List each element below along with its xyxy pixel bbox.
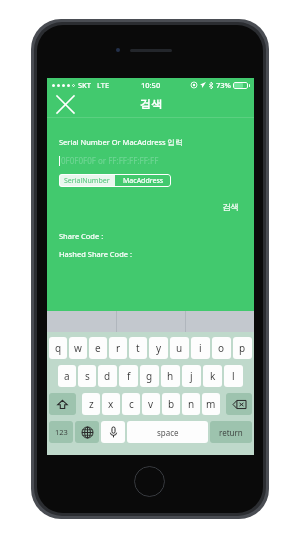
staticText: n: [188, 397, 195, 411]
button[interactable]: w: [69, 337, 87, 359]
button[interactable]: r: [109, 337, 127, 359]
staticText: w: [74, 341, 82, 355]
staticText: z: [89, 397, 94, 411]
staticText: Hashed Share Code :: [59, 249, 132, 259]
staticText: l: [232, 369, 235, 383]
staticText: i: [199, 341, 202, 355]
staticText: 73%: [216, 80, 231, 90]
button[interactable]: m: [202, 393, 220, 415]
staticText: LTE: [97, 80, 110, 90]
button[interactable]: Backspace: [226, 393, 252, 415]
staticText: return: [219, 427, 243, 438]
staticText: r: [116, 341, 121, 355]
button[interactable]: v: [142, 393, 160, 415]
staticText: g: [146, 369, 153, 383]
button[interactable]: u: [170, 337, 189, 359]
staticText: f: [127, 369, 131, 383]
button[interactable]: d: [98, 365, 117, 387]
staticText: 10:50: [141, 80, 161, 90]
staticText: c: [129, 397, 134, 411]
button[interactable]: SerialNumber: [59, 174, 115, 187]
staticText: j: [190, 369, 193, 383]
button[interactable]: Home: [134, 466, 165, 497]
staticText: h: [167, 369, 174, 383]
staticText: b: [168, 397, 175, 411]
button[interactable]: 검색: [219, 200, 242, 215]
staticText: v: [148, 397, 154, 411]
button[interactable]: l: [224, 365, 243, 387]
button[interactable]: b: [162, 393, 180, 415]
button[interactable]: k: [203, 365, 222, 387]
button[interactable]: MacAddress: [115, 174, 171, 187]
staticText: u: [176, 341, 183, 355]
button[interactable]: s: [78, 365, 96, 387]
staticText: Serial Number Or MacAddress 입력: [59, 137, 183, 147]
staticText: y: [156, 341, 162, 355]
staticText: o: [218, 341, 225, 355]
button[interactable]: i: [191, 337, 210, 359]
staticText: t: [136, 341, 140, 355]
staticText: 검색: [140, 97, 162, 111]
button[interactable]: n: [182, 393, 200, 415]
staticText: k: [210, 369, 216, 383]
staticText: Share Code :: [59, 231, 104, 241]
staticText: m: [206, 397, 216, 411]
staticText: a: [64, 369, 70, 383]
button[interactable]: Close: [53, 92, 77, 116]
button[interactable]: t: [129, 337, 147, 359]
button[interactable]: x: [102, 393, 120, 415]
button[interactable]: p: [233, 337, 252, 359]
button[interactable]: o: [212, 337, 231, 359]
staticText: SerialNumber: [64, 176, 110, 186]
staticText: s: [85, 369, 90, 383]
staticText: q: [55, 341, 62, 355]
staticText: d: [104, 369, 111, 383]
button[interactable]: j: [182, 365, 201, 387]
button[interactable]: g: [140, 365, 159, 387]
button[interactable]: Dictation: [101, 421, 125, 443]
button[interactable]: Change keyboard: [75, 421, 99, 443]
button[interactable]: f: [119, 365, 138, 387]
staticText: x: [108, 397, 114, 411]
button[interactable]: space: [127, 421, 208, 443]
button[interactable]: y: [149, 337, 168, 359]
staticText: 검색: [222, 202, 239, 213]
staticText: e: [95, 341, 101, 355]
button[interactable]: a: [58, 365, 76, 387]
button[interactable]: Shift: [49, 393, 76, 415]
staticText: SKT: [78, 80, 92, 90]
button[interactable]: z: [82, 393, 100, 415]
button[interactable]: h: [161, 365, 180, 387]
button[interactable]: q: [49, 337, 67, 359]
button[interactable]: 123: [49, 421, 73, 443]
button[interactable]: e: [89, 337, 107, 359]
button[interactable]: return: [210, 421, 252, 443]
staticText: 0F0F0F0F or FF:FF:FF:FF:FF: [61, 155, 159, 166]
staticText: space: [157, 427, 179, 438]
staticText: MacAddress: [123, 176, 164, 186]
staticText: p: [239, 341, 246, 355]
staticText: 123: [55, 427, 68, 437]
button[interactable]: c: [122, 393, 140, 415]
